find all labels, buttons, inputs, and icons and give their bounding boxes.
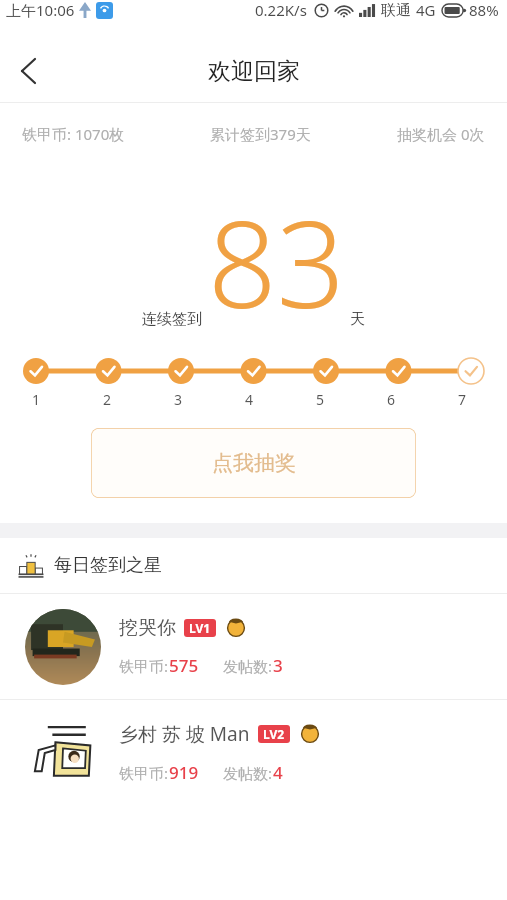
staticText: 天 <box>350 310 365 329</box>
staticText: 5 <box>316 390 325 409</box>
staticText: 88% <box>469 0 499 20</box>
staticText: 0.22K/s <box>255 0 307 20</box>
staticText: 7 <box>458 390 467 409</box>
staticText: 1 <box>32 390 41 409</box>
staticText: 83 <box>208 180 346 343</box>
staticText: 铁甲币: <box>119 763 169 783</box>
staticText: 连续签到 <box>142 310 202 329</box>
staticText: 联通 <box>381 1 411 20</box>
staticText: 6 <box>387 390 396 409</box>
staticText: 3 <box>273 654 283 677</box>
button[interactable]: Back <box>0 43 56 99</box>
button[interactable]: 点我抽奖 <box>91 428 416 498</box>
staticText: 累计签到379天 <box>210 124 311 144</box>
staticText: 2 <box>103 390 112 409</box>
staticText: LV2 <box>263 726 285 742</box>
staticText: 铁甲币: <box>119 656 169 676</box>
button[interactable]: 挖哭你 <box>0 594 507 699</box>
staticText: 抽奖机会 0次 <box>397 124 485 144</box>
staticText: 发帖数: <box>223 763 273 783</box>
staticText: 铁甲币: 1070枚 <box>22 124 125 144</box>
staticText: 上午10:06 <box>6 0 75 20</box>
staticText: 4 <box>273 761 283 784</box>
staticText: 发帖数: <box>223 656 273 676</box>
staticText: 点我抽奖 <box>212 450 296 476</box>
staticText: 4 <box>245 390 254 409</box>
staticText: LV1 <box>189 620 211 636</box>
staticText: 每日签到之星 <box>54 554 162 577</box>
staticText: 挖哭你 <box>119 616 176 640</box>
staticText: 4G <box>416 0 436 20</box>
staticText: 3 <box>174 390 183 409</box>
staticText: 乡村 苏 坡 Man <box>119 721 250 747</box>
staticText: 919 <box>169 761 199 784</box>
button[interactable]: 乡村 苏 坡 Man <box>0 700 507 805</box>
staticText: 欢迎回家 <box>208 57 300 86</box>
staticText: 575 <box>169 654 199 677</box>
